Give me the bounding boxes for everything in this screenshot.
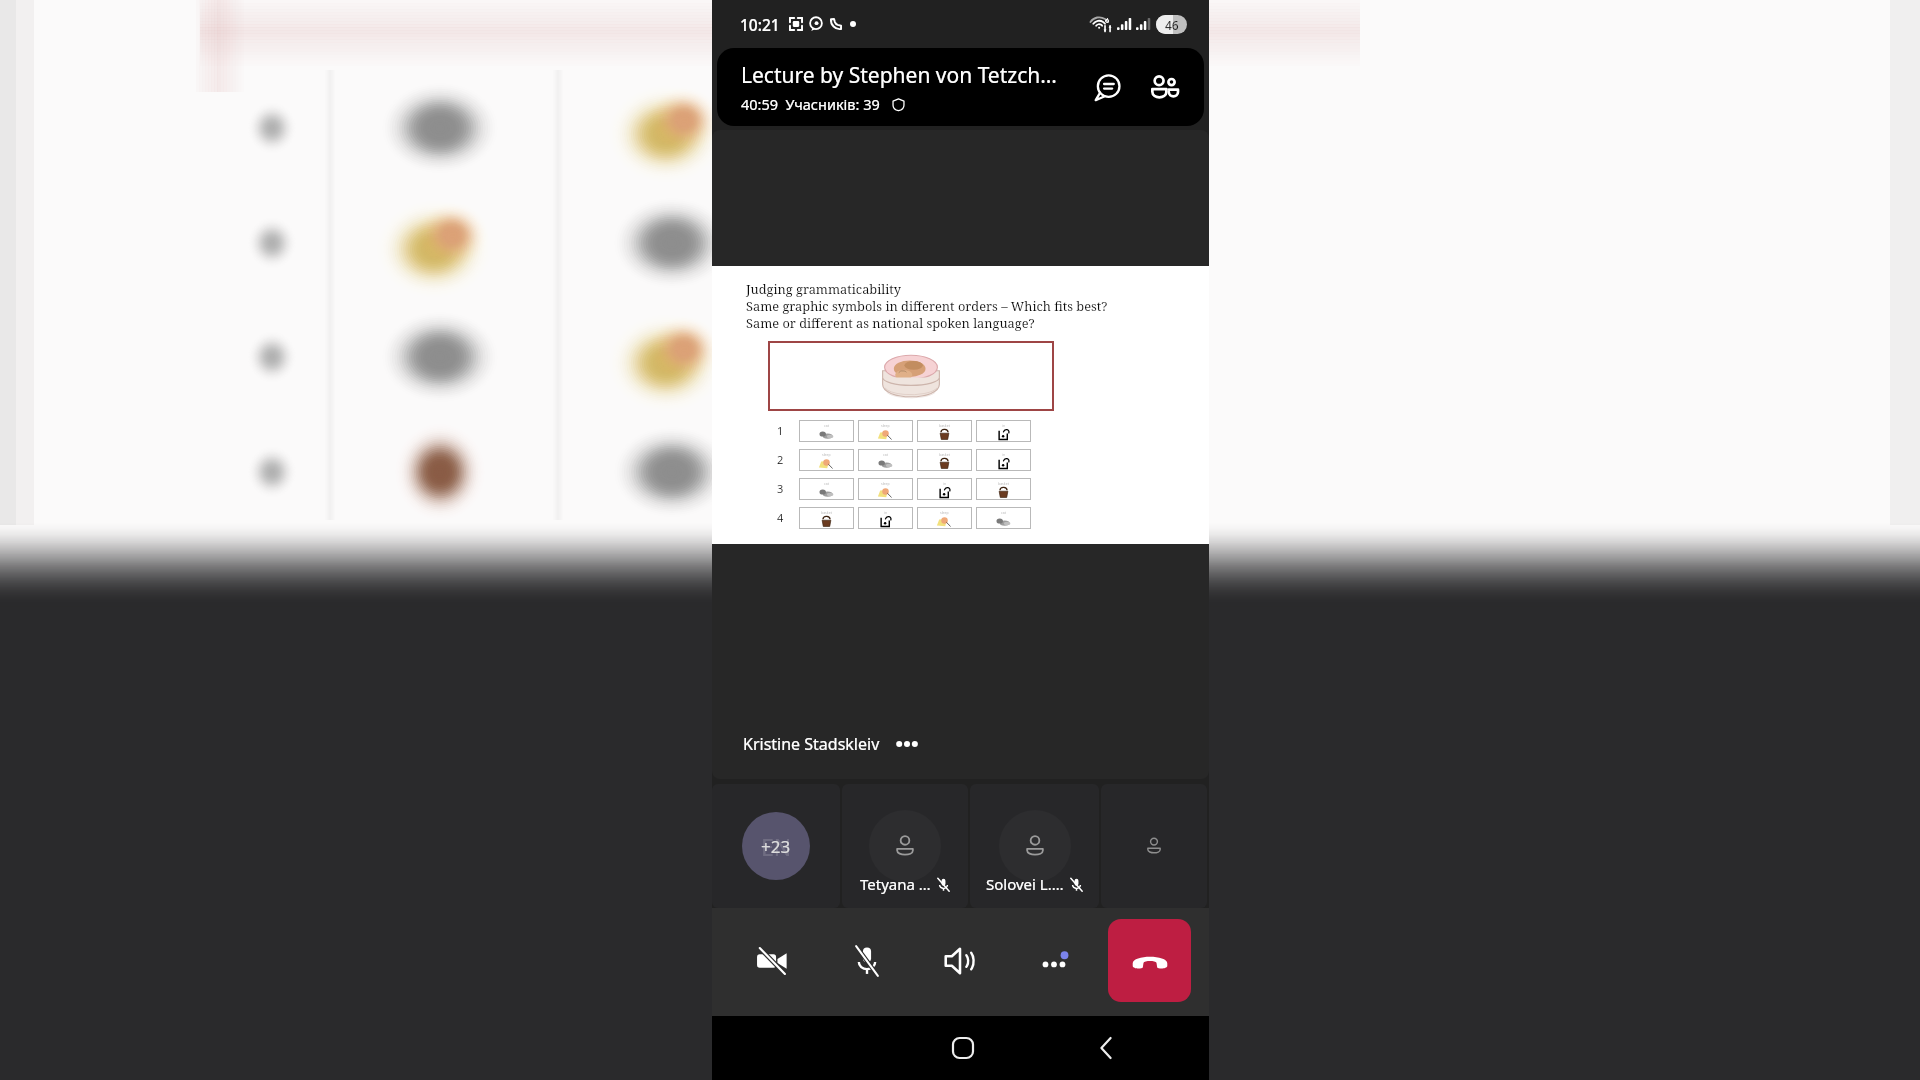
- staticText: basket: [939, 452, 950, 457]
- staticText: 40:59 Учасників: 39: [741, 94, 880, 114]
- staticText: cat: [824, 481, 829, 486]
- button[interactable]: Microphone off: [840, 934, 894, 988]
- staticText: sleep: [822, 452, 831, 457]
- staticText: Same or different as national spoken lan…: [746, 314, 1035, 331]
- staticText: cat: [883, 452, 888, 457]
- staticText: 3: [777, 481, 784, 496]
- button[interactable]: Participant: [1101, 784, 1207, 908]
- button[interactable]: Lecture by Stephen von Tetzch…: [717, 48, 1204, 126]
- staticText: sleep: [881, 481, 890, 486]
- button[interactable]: Chat: [1084, 65, 1128, 109]
- staticText: Same graphic symbols in different orders…: [746, 297, 1108, 314]
- staticText: in: [1002, 423, 1006, 428]
- staticText: in: [1002, 452, 1006, 457]
- staticText: EN: [761, 831, 792, 862]
- staticText: Solovei L.…: [986, 874, 1064, 894]
- button[interactable]: Camera off: [745, 934, 799, 988]
- button[interactable]: Shared screen: [712, 130, 1209, 779]
- button[interactable]: Solovei L.…: [970, 784, 1099, 908]
- button[interactable]: Kristine Stadskleiv options: [743, 733, 919, 755]
- staticText: 4: [777, 510, 784, 525]
- staticText: 10:21: [740, 14, 780, 35]
- staticText: 1: [777, 423, 784, 438]
- staticText: +23: [761, 835, 791, 858]
- staticText: basket: [821, 510, 832, 515]
- staticText: cat: [1001, 510, 1006, 515]
- button[interactable]: End call: [1108, 919, 1191, 1002]
- button[interactable]: Home: [939, 1024, 987, 1072]
- staticText: in: [884, 510, 888, 515]
- staticText: Lecture by Stephen von Tetzch…: [741, 61, 1057, 90]
- staticText: sleep: [940, 510, 949, 515]
- button[interactable]: Participants: [1142, 65, 1186, 109]
- staticText: basket: [939, 423, 950, 428]
- staticText: 46: [1165, 17, 1179, 33]
- staticText: cat: [824, 423, 829, 428]
- staticText: Kristine Stadskleiv: [743, 733, 880, 755]
- staticText: sleep: [881, 423, 890, 428]
- button[interactable]: Speaker: [933, 934, 987, 988]
- staticText: Tetyana …: [860, 874, 931, 894]
- staticText: Judging grammaticability: [746, 280, 902, 297]
- button[interactable]: More options: [1028, 934, 1082, 988]
- staticText: basket: [998, 481, 1009, 486]
- staticText: 2: [777, 452, 784, 467]
- button[interactable]: Participant: [712, 784, 840, 908]
- staticText: in: [943, 481, 947, 486]
- button[interactable]: Back: [1083, 1024, 1131, 1072]
- button[interactable]: Tetyana …: [842, 784, 968, 908]
